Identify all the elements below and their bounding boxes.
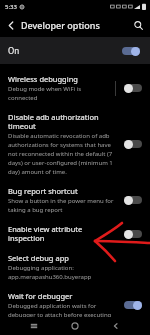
staticText: Debugged application waits for <box>8 302 97 310</box>
staticText: debugger to attach before executing <box>8 311 112 319</box>
staticText: Enable view attribute inspection <box>8 224 119 243</box>
button[interactable]: Toggle off <box>122 138 144 150</box>
staticText: authorizations for systems that have <box>8 141 111 149</box>
staticText: connected <box>8 94 38 102</box>
staticText: Select debug app <box>8 253 69 263</box>
button[interactable]: Wait for debugger <box>0 286 150 324</box>
staticText: Disable automatic revocation of adb <box>8 132 110 140</box>
button[interactable]: Verify apps over USB <box>0 324 150 335</box>
button[interactable]: Toggle on <box>122 299 144 311</box>
button[interactable]: Home <box>54 317 95 335</box>
button[interactable]: Back <box>95 317 136 335</box>
staticText: Debug mode when WiFi is <box>8 85 82 93</box>
button[interactable]: On <box>0 37 150 64</box>
staticText: Verify apps over USB <box>8 329 81 330</box>
button[interactable]: Bug report shortcut <box>0 181 150 219</box>
button[interactable]: Select debug app <box>0 248 150 286</box>
button[interactable]: Toggle on <box>120 45 142 57</box>
button[interactable]: Toggle off <box>122 194 144 206</box>
staticText: 5:33 <box>5 3 17 11</box>
staticText: Debugging application: <box>8 264 74 272</box>
staticText: Developer options <box>21 19 100 31</box>
staticText: Wireless debugging <box>8 74 78 84</box>
staticText: app.merapashu360.buyerapp <box>8 273 92 281</box>
button[interactable]: Wireless debugging <box>0 69 150 107</box>
button[interactable]: Enable view attribute inspection <box>0 219 150 248</box>
staticText: Wait for debugger <box>8 291 73 301</box>
staticText: day) amount of time. <box>8 168 67 176</box>
staticText: Bug report shortcut <box>8 186 78 196</box>
button[interactable]: Recents <box>14 317 54 335</box>
button[interactable]: Disable adb authorization timeout <box>0 107 150 181</box>
staticText: Disable adb authorization timeout <box>8 112 119 131</box>
button[interactable]: Search <box>130 17 146 33</box>
button[interactable]: Toggle off <box>122 82 144 94</box>
staticText: not reconnected within the default (7 <box>8 150 113 158</box>
staticText: taking a bug report <box>8 206 63 214</box>
staticText: Show a button in the power menu for <box>8 197 114 205</box>
staticText: On <box>8 45 20 56</box>
button[interactable]: Toggle off <box>122 228 144 240</box>
button[interactable]: Back <box>4 18 18 32</box>
staticText: days) or user-configured (minimum 1 <box>8 159 113 167</box>
